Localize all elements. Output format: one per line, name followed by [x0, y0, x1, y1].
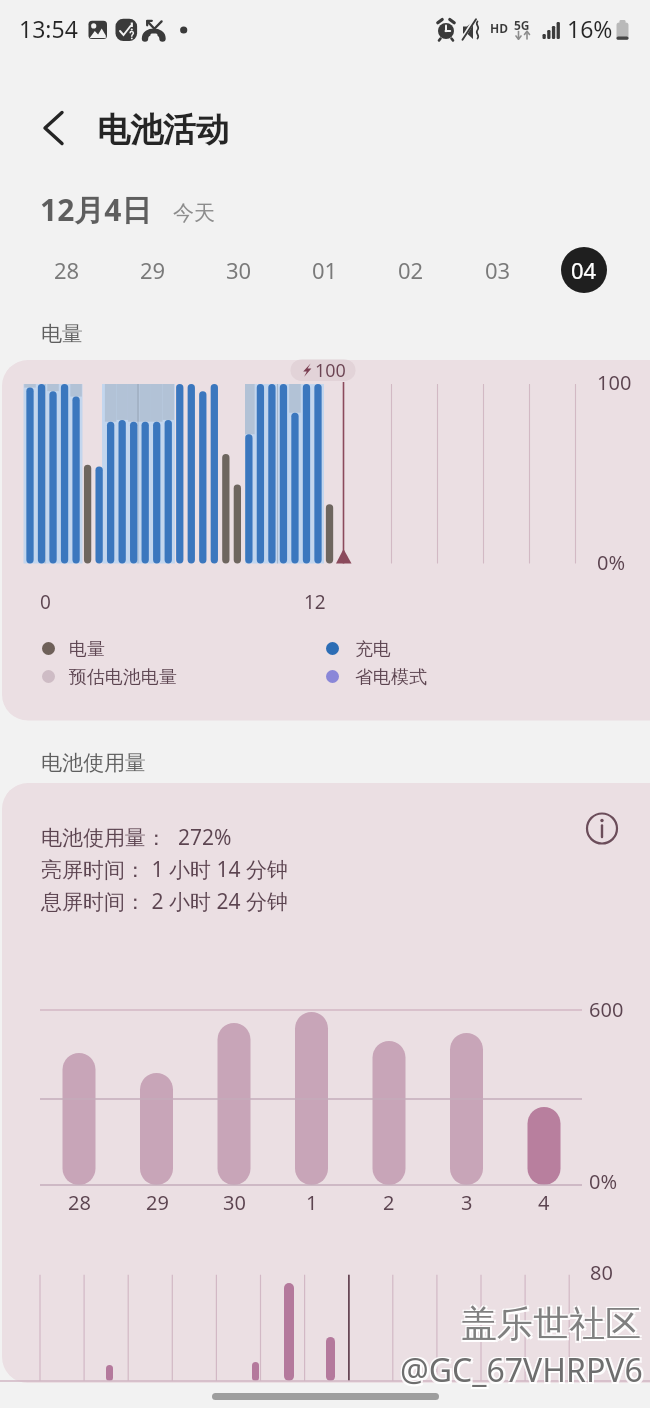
staticText: 30 [226, 255, 252, 285]
staticText: 3 [461, 1189, 473, 1215]
staticText: 电量 [69, 638, 105, 661]
staticText: @GC_67VHRPV6 [402, 1347, 645, 1391]
staticText: 盖乐世社区 [461, 1301, 641, 1346]
staticText: 预估电池电量 [69, 666, 177, 689]
staticText: 0% [589, 1168, 618, 1195]
staticText: 今天 [173, 200, 215, 226]
button[interactable]: 30 [216, 247, 262, 293]
staticText: 充电 [355, 638, 391, 661]
staticText: @GC_67VHRPV6 [400, 1348, 643, 1392]
staticText: 30 [223, 1189, 246, 1215]
staticText: 电量 [41, 321, 83, 347]
staticText: 息屏时间： 2 小时 24 分钟 [41, 887, 288, 916]
button[interactable]: 04 [561, 247, 607, 293]
staticText: 电池使用量 [41, 750, 146, 776]
button[interactable]: 02 [388, 247, 434, 293]
staticText: 13:54 [19, 13, 78, 44]
staticText: 28 [68, 1189, 91, 1215]
staticText: 5G [514, 17, 530, 33]
staticText: 盖乐世社区 [460, 1300, 640, 1345]
staticText: 12 [304, 589, 326, 615]
staticText: @GC_67VHRPV6 [402, 1350, 645, 1394]
staticText: 12月4日 [40, 189, 152, 230]
button[interactable]: 29 [130, 247, 176, 293]
staticText: 1 [306, 1189, 318, 1215]
staticText: @GC_67VHRPV6 [399, 1350, 642, 1394]
staticText: 0 [40, 589, 51, 615]
staticText: 0% [597, 549, 626, 576]
button[interactable]: Back [31, 105, 77, 151]
staticText: 4 [538, 1189, 550, 1215]
staticText: 02 [398, 255, 424, 285]
staticText: @GC_67VHRPV6 [399, 1347, 642, 1391]
staticText: 2 [383, 1189, 395, 1215]
staticText: 600 [589, 996, 624, 1023]
staticText: 省电模式 [355, 666, 427, 689]
staticText: 100 [315, 358, 346, 383]
staticText: 16% [567, 13, 613, 44]
staticText: 28 [54, 255, 80, 285]
button[interactable]: 28 [44, 247, 90, 293]
staticText: 04 [571, 255, 597, 285]
staticText: 亮屏时间： 1 小时 14 分钟 [41, 855, 288, 884]
staticText: 100 [597, 369, 632, 396]
staticText: 29 [146, 1189, 169, 1215]
staticText: 盖乐世社区 [463, 1300, 643, 1345]
staticText: 盖乐世社区 [463, 1303, 643, 1348]
staticText: 01 [312, 255, 338, 285]
staticText: HD [490, 20, 508, 36]
button[interactable]: 01 [302, 247, 348, 293]
staticText: 03 [485, 255, 511, 285]
staticText: 电池活动 [97, 109, 229, 151]
staticText: 29 [140, 255, 166, 285]
staticText: 电池使用量： 272% [41, 823, 232, 852]
button[interactable]: 03 [475, 247, 521, 293]
staticText: 盖乐世社区 [460, 1303, 640, 1348]
staticText: 80 [590, 1259, 613, 1286]
